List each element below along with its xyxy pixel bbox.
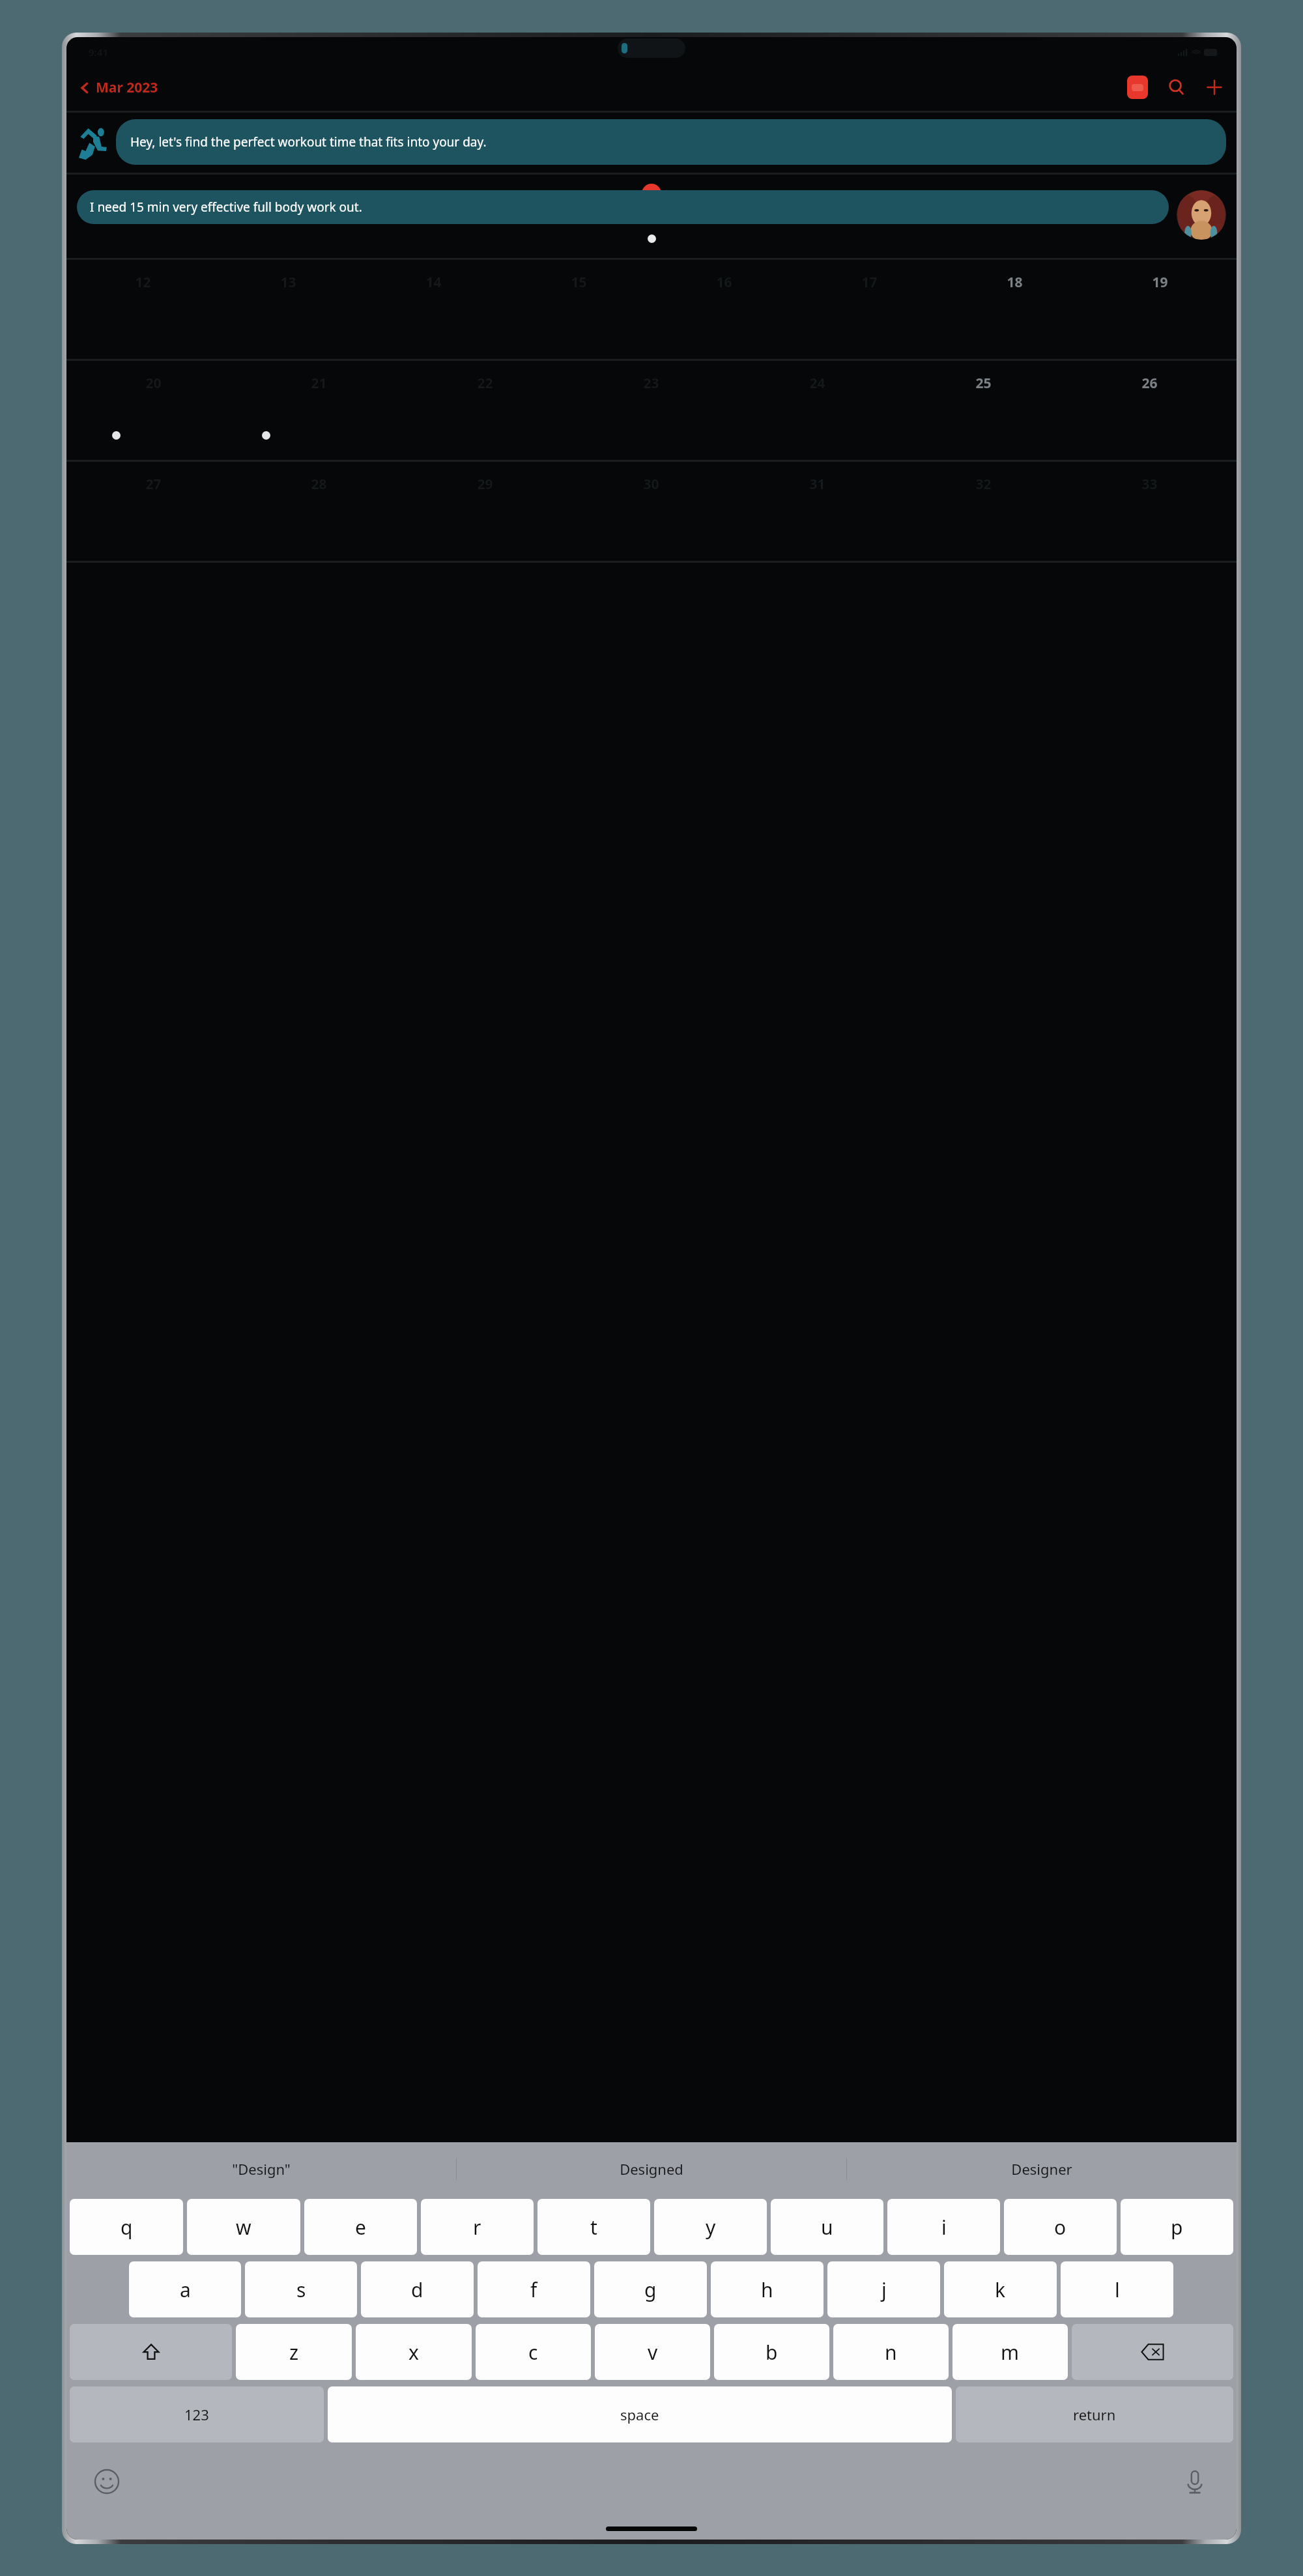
button[interactable]: Add — [1205, 78, 1224, 96]
button[interactable]: g — [594, 2261, 707, 2317]
staticText: o — [1054, 2214, 1067, 2241]
staticText: r — [473, 2214, 481, 2241]
button[interactable]: t — [537, 2199, 650, 2255]
button[interactable]: Designed — [457, 2142, 846, 2196]
button[interactable]: s — [245, 2261, 357, 2317]
button[interactable]: Emoji — [94, 2469, 120, 2495]
button[interactable]: 18 — [942, 273, 1087, 292]
staticText: 18 — [1007, 273, 1023, 292]
staticText: 24 — [809, 374, 825, 393]
staticText: a — [180, 2276, 191, 2303]
button[interactable]: space — [328, 2386, 952, 2442]
button[interactable]: Backspace — [1072, 2324, 1233, 2380]
button[interactable]: Designer — [847, 2142, 1237, 2196]
button[interactable]: Shift — [70, 2324, 232, 2380]
staticText: "Design" — [232, 2159, 291, 2179]
staticText: 33 — [1141, 475, 1158, 494]
staticText: Hey, let's find the perfect workout time… — [130, 134, 487, 150]
staticText: 9:41 — [89, 46, 108, 59]
button[interactable]: 123 — [70, 2386, 324, 2442]
staticText: 12 — [135, 273, 151, 292]
button[interactable]: x — [356, 2324, 472, 2380]
other: Back — [78, 81, 91, 94]
button[interactable]: m — [952, 2324, 1068, 2380]
button[interactable]: e — [304, 2199, 417, 2255]
button[interactable]: n — [833, 2324, 949, 2380]
staticText: Designer — [1011, 2159, 1072, 2179]
button[interactable]: v — [595, 2324, 710, 2380]
button[interactable]: I need 15 min very effective full body w… — [77, 190, 1169, 224]
button[interactable]: p — [1121, 2199, 1233, 2255]
staticText: 31 — [809, 475, 825, 494]
staticText: 21 — [311, 374, 327, 393]
button[interactable]: j — [827, 2261, 940, 2317]
button[interactable]: Dictate — [1182, 2469, 1208, 2495]
staticText: h — [761, 2276, 773, 2303]
button[interactable]: u — [771, 2199, 883, 2255]
staticText: k — [995, 2276, 1006, 2303]
staticText: 32 — [975, 475, 992, 494]
button[interactable]: b — [714, 2324, 829, 2380]
button[interactable]: y — [654, 2199, 767, 2255]
button[interactable]: c — [476, 2324, 591, 2380]
staticText: return — [1073, 2405, 1116, 2424]
button[interactable]: k — [944, 2261, 1057, 2317]
staticText: z — [289, 2339, 299, 2366]
button[interactable]: r — [421, 2199, 534, 2255]
staticText: 29 — [477, 475, 493, 494]
staticText: i — [941, 2214, 947, 2241]
staticText: 20 — [145, 374, 162, 393]
staticText: 26 — [1141, 374, 1158, 393]
button[interactable]: Scale — [1127, 76, 1148, 99]
staticText: Mar 2023 — [96, 78, 158, 97]
button[interactable]: l — [1061, 2261, 1173, 2317]
staticText: 28 — [311, 475, 327, 494]
button[interactable]: f — [478, 2261, 590, 2317]
button[interactable]: 26 — [1067, 374, 1233, 393]
staticText: j — [881, 2276, 887, 2303]
button[interactable]: q — [70, 2199, 183, 2255]
staticText: 25 — [975, 374, 992, 393]
button[interactable]: "Design" — [66, 2142, 456, 2196]
staticText: p — [1171, 2214, 1183, 2241]
button[interactable]: w — [187, 2199, 300, 2255]
button[interactable]: return — [956, 2386, 1233, 2442]
staticText: v — [648, 2339, 658, 2366]
button[interactable]: 25 — [900, 374, 1067, 393]
button[interactable]: o — [1004, 2199, 1117, 2255]
button[interactable]: a — [129, 2261, 241, 2317]
staticText: e — [355, 2214, 366, 2241]
button[interactable]: i — [887, 2199, 1000, 2255]
button[interactable]: z — [236, 2324, 352, 2380]
button[interactable]: h — [711, 2261, 823, 2317]
button[interactable]: Back — [78, 78, 158, 97]
button[interactable]: 19 — [1087, 273, 1233, 292]
staticText: 27 — [145, 475, 162, 494]
staticText: I need 15 min very effective full body w… — [90, 199, 362, 216]
button[interactable]: d — [361, 2261, 474, 2317]
staticText: 15 — [571, 273, 587, 292]
button[interactable]: Hey, let's find the perfect workout time… — [116, 119, 1226, 165]
staticText: u — [821, 2214, 833, 2241]
staticText: t — [590, 2214, 597, 2241]
button[interactable]: Search — [1167, 78, 1186, 96]
staticText: w — [236, 2214, 251, 2241]
